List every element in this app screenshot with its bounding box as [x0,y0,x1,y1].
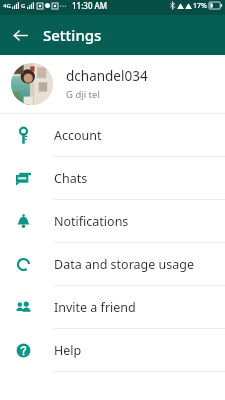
staticText: dchandel034 [66,67,148,85]
button[interactable]: Invite a friend [0,286,225,328]
staticText: 4G [3,2,11,10]
staticText: Account [54,127,102,144]
staticText: Notifications [54,213,129,230]
button[interactable]: Data and storage usage [0,243,225,285]
staticText: Data and storage usage [54,256,195,273]
staticText: G dji tel [66,88,100,101]
staticText: G [21,2,26,10]
button[interactable]: Help [0,329,225,371]
button[interactable]: Back [5,20,35,50]
button[interactable]: Account [0,114,225,156]
button[interactable]: Notifications [0,200,225,242]
button[interactable]: Chats [0,157,225,199]
staticText: Chats [54,170,88,187]
staticText: 11:30 AM [72,0,108,11]
staticText: Invite a friend [54,299,136,316]
staticText: Settings [43,25,102,45]
button[interactable]: dchandel034 [0,55,225,113]
staticText: Help [54,342,82,359]
staticText: 17% [193,1,207,11]
